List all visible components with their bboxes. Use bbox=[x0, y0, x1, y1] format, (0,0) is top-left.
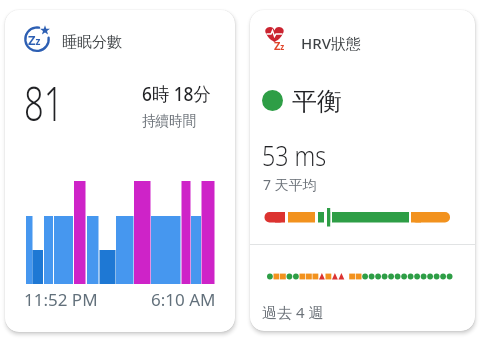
staticText: 6:10 AM bbox=[151, 288, 216, 311]
staticText: 6時 18分 bbox=[142, 81, 211, 107]
staticText: 7 天平均 bbox=[263, 175, 317, 194]
staticText: 平衡 bbox=[292, 86, 342, 117]
staticText: 持續時間 bbox=[142, 112, 196, 131]
staticText: Zz bbox=[28, 31, 41, 49]
staticText: Zz bbox=[274, 38, 285, 53]
staticText: 睡眠分數 bbox=[62, 33, 122, 52]
button[interactable]: Zz bbox=[250, 10, 475, 331]
button[interactable]: Zz bbox=[5, 10, 235, 332]
staticText: 81 bbox=[24, 70, 64, 135]
staticText: 53 ms bbox=[262, 136, 327, 174]
staticText: 11:52 PM bbox=[24, 288, 98, 311]
staticText: HRV狀態 bbox=[301, 33, 361, 53]
staticText: 過去 4 週 bbox=[262, 302, 324, 322]
